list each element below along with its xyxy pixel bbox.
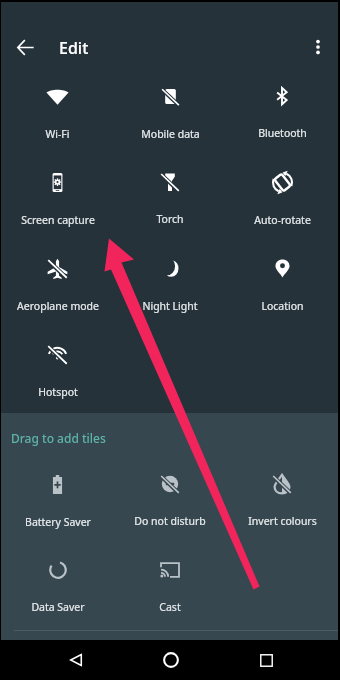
button[interactable]: Back xyxy=(7,29,43,65)
staticText: Hotspot xyxy=(38,385,78,399)
staticText: Wi-Fi xyxy=(45,127,70,141)
button[interactable]: Hotspot xyxy=(1,330,114,413)
staticText: Bluetooth xyxy=(258,126,307,140)
staticText: Auto-rotate xyxy=(254,213,311,227)
staticText: Data Saver xyxy=(31,600,85,614)
button[interactable]: Torch xyxy=(114,158,226,244)
button[interactable]: Home xyxy=(151,640,191,680)
staticText: Aeroplane mode xyxy=(17,299,99,313)
staticText: Screen capture xyxy=(21,213,95,227)
button[interactable]: Cast xyxy=(114,546,226,632)
button[interactable]: Aeroplane mode xyxy=(1,244,114,330)
button[interactable]: Mobile data xyxy=(114,72,226,158)
button[interactable]: Wi-Fi xyxy=(1,72,114,158)
button[interactable]: Back xyxy=(56,640,96,680)
staticText: Do not disturb xyxy=(134,514,206,528)
staticText: Mobile data xyxy=(141,127,200,141)
staticText: Location xyxy=(261,299,304,313)
button[interactable]: Night Light xyxy=(114,244,226,330)
staticText: Battery Saver xyxy=(25,515,91,529)
button[interactable]: Auto-rotate xyxy=(226,158,338,244)
staticText: Cast xyxy=(159,600,181,614)
button[interactable]: More options xyxy=(300,29,336,65)
staticText: Invert colours xyxy=(248,514,317,528)
button[interactable]: Bluetooth xyxy=(226,72,338,158)
staticText: Night Light xyxy=(142,299,198,313)
button[interactable]: Battery Saver xyxy=(1,460,114,546)
button[interactable]: Recents xyxy=(246,640,286,680)
button[interactable]: Data Saver xyxy=(1,546,114,632)
button[interactable]: Invert colours xyxy=(226,460,338,546)
button[interactable]: Screen capture xyxy=(1,158,114,244)
staticText: Torch xyxy=(156,212,184,226)
button[interactable]: Do not disturb xyxy=(114,460,226,546)
button[interactable]: Location xyxy=(226,244,338,330)
staticText: Drag to add tiles xyxy=(11,430,106,446)
staticText: Edit xyxy=(59,37,89,59)
